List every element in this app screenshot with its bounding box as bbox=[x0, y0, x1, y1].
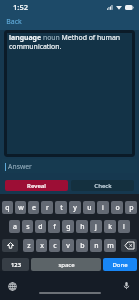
staticText: h bbox=[80, 222, 85, 232]
staticText: r bbox=[46, 203, 49, 213]
button[interactable]: x bbox=[36, 239, 47, 252]
staticText: n bbox=[94, 241, 99, 251]
button[interactable]: b bbox=[76, 239, 88, 252]
staticText: u bbox=[87, 203, 92, 213]
staticText: j bbox=[95, 222, 97, 232]
button[interactable]: r bbox=[41, 201, 53, 214]
staticText: g bbox=[66, 222, 71, 232]
button[interactable]: language noun Method of human communicat… bbox=[4, 30, 135, 157]
staticText: p bbox=[129, 203, 134, 213]
button[interactable]: z bbox=[23, 239, 34, 252]
button[interactable]: Answer bbox=[2, 159, 137, 173]
staticText: m bbox=[107, 241, 114, 251]
staticText: language noun Method of human communicat… bbox=[9, 33, 131, 51]
staticText: Back bbox=[6, 17, 22, 27]
staticText: w bbox=[18, 203, 24, 213]
staticText: d bbox=[38, 222, 43, 232]
staticText: Reveal bbox=[27, 182, 46, 190]
staticText: o bbox=[115, 203, 120, 213]
button[interactable]: w bbox=[15, 201, 26, 214]
button[interactable]: n bbox=[90, 239, 102, 252]
button[interactable]: Backspace bbox=[121, 239, 137, 252]
button[interactable]: g bbox=[62, 220, 74, 233]
staticText: c bbox=[53, 241, 57, 251]
button[interactable]: f bbox=[48, 220, 60, 233]
button[interactable]: o bbox=[111, 201, 123, 214]
staticText: y bbox=[73, 203, 77, 213]
staticText: l bbox=[123, 222, 125, 232]
staticText: Answer bbox=[8, 162, 32, 171]
button[interactable]: Done bbox=[103, 258, 137, 271]
staticText: f bbox=[53, 222, 56, 232]
staticText: Check bbox=[94, 182, 112, 190]
staticText: b bbox=[80, 241, 85, 251]
staticText: 1:52 bbox=[13, 2, 28, 12]
button[interactable]: j bbox=[90, 220, 102, 233]
button[interactable]: e bbox=[28, 201, 39, 214]
staticText: x bbox=[40, 241, 44, 251]
button[interactable]: Shift bbox=[2, 239, 18, 252]
button[interactable]: h bbox=[76, 220, 88, 233]
staticText: 123 bbox=[11, 261, 21, 269]
button[interactable]: t bbox=[55, 201, 67, 214]
button[interactable]: i bbox=[97, 201, 109, 214]
staticText: a bbox=[13, 222, 17, 232]
staticText: z bbox=[27, 241, 31, 251]
button[interactable]: l bbox=[118, 220, 130, 233]
button[interactable]: c bbox=[49, 239, 60, 252]
staticText: Done bbox=[112, 261, 128, 269]
button[interactable]: Back bbox=[6, 17, 22, 27]
button[interactable]: u bbox=[83, 201, 95, 214]
staticText: e bbox=[32, 203, 36, 213]
staticText: v bbox=[66, 241, 70, 251]
staticText: i bbox=[102, 203, 104, 213]
button[interactable]: 123 bbox=[2, 258, 29, 271]
staticText: q bbox=[5, 203, 10, 213]
button[interactable]: a bbox=[9, 220, 20, 233]
button[interactable]: Voice input bbox=[122, 281, 131, 290]
staticText: s bbox=[26, 222, 30, 232]
button[interactable]: p bbox=[125, 201, 137, 214]
button[interactable]: m bbox=[104, 239, 116, 252]
button[interactable]: k bbox=[104, 220, 116, 233]
button[interactable]: Check bbox=[71, 180, 134, 191]
staticText: t bbox=[60, 203, 63, 213]
button[interactable]: v bbox=[62, 239, 74, 252]
staticText: k bbox=[108, 222, 112, 232]
button[interactable]: d bbox=[35, 220, 46, 233]
button[interactable]: y bbox=[69, 201, 81, 214]
button[interactable]: q bbox=[2, 201, 13, 214]
button[interactable]: s bbox=[22, 220, 33, 233]
button[interactable]: Reveal bbox=[5, 180, 68, 191]
button[interactable]: Change keyboard bbox=[8, 282, 17, 291]
button[interactable]: space bbox=[31, 258, 101, 271]
staticText: space bbox=[58, 261, 75, 269]
